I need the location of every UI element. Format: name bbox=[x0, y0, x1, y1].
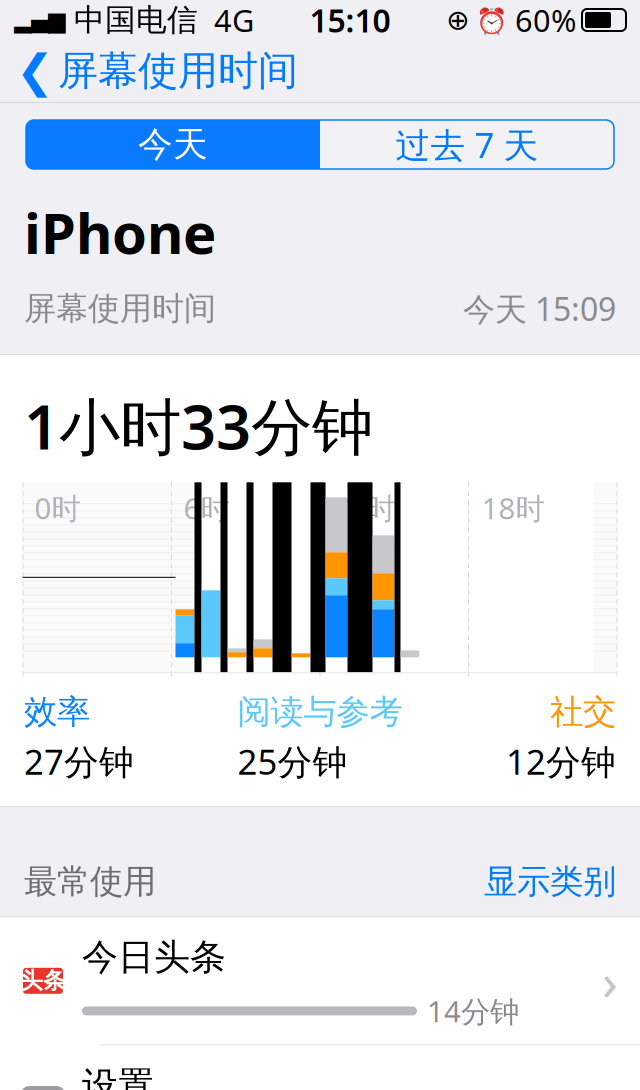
staticText: ▂▄▆ bbox=[14, 7, 65, 33]
staticText: 15:10 bbox=[309, 0, 390, 41]
staticText: 最常使用 bbox=[24, 861, 156, 902]
staticText: iPhone bbox=[24, 195, 216, 269]
staticText: 阅读与参考 bbox=[237, 691, 402, 732]
staticText: 4G bbox=[198, 0, 254, 40]
button[interactable]: ❮ bbox=[0, 37, 298, 105]
staticText: 25分钟 bbox=[237, 738, 347, 784]
staticText: 中国电信 bbox=[65, 1, 198, 39]
staticText: › bbox=[602, 947, 618, 1014]
staticText: 效率 bbox=[24, 691, 90, 732]
staticText: 设置 bbox=[82, 1063, 154, 1090]
staticText: 社交 bbox=[550, 691, 616, 732]
staticText: 1小时33分钟 bbox=[24, 385, 373, 466]
staticText: ⏰ bbox=[469, 3, 515, 37]
staticText: 18时 bbox=[481, 488, 544, 527]
button[interactable]: 显示类别 bbox=[484, 861, 616, 902]
staticText: 今日头条 bbox=[82, 935, 226, 979]
staticText: 屏幕使用时间 bbox=[24, 289, 216, 328]
button[interactable]: 设置 bbox=[0, 1045, 640, 1090]
staticText: 60% bbox=[515, 0, 576, 40]
staticText: 0时 bbox=[34, 488, 80, 527]
staticText: ⊕ bbox=[446, 4, 469, 36]
staticText: 屏幕使用时间 bbox=[58, 46, 298, 95]
button[interactable]: 头条 bbox=[0, 917, 640, 1045]
staticText: 今天 15:09 bbox=[463, 287, 616, 330]
staticText: 头条 bbox=[20, 967, 66, 995]
staticText: 14分钟 bbox=[427, 991, 519, 1030]
staticText: 12分钟 bbox=[506, 738, 616, 784]
button[interactable]: 过去 7 天 bbox=[320, 120, 614, 169]
staticText: ❮ bbox=[16, 45, 54, 97]
staticText: 今天 bbox=[138, 123, 208, 166]
staticText: 6时 bbox=[183, 488, 229, 527]
staticText: 12时 bbox=[332, 488, 395, 527]
staticText: 过去 7 天 bbox=[395, 121, 538, 167]
button[interactable]: 今天 bbox=[26, 120, 320, 169]
staticText: 27分钟 bbox=[24, 738, 134, 784]
staticText: 显示类别 bbox=[484, 861, 616, 902]
